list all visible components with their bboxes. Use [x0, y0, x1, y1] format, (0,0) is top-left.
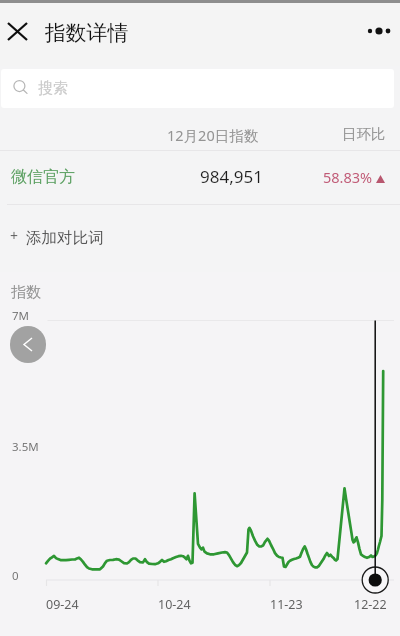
staticText: 微信官方 — [11, 167, 75, 187]
staticText: 984,951 — [200, 165, 263, 188]
staticText: 12月20日指数 — [167, 125, 259, 145]
staticText: 7M — [12, 308, 30, 324]
staticText: 12-22 — [354, 596, 387, 613]
staticText: 指数详情 — [45, 20, 129, 46]
staticText: 58.83% — [323, 167, 373, 187]
staticText: 指数 — [11, 283, 41, 302]
staticText: 0 — [12, 568, 19, 584]
button[interactable]: 搜索 — [1, 69, 394, 108]
button[interactable]: Close — [0, 7, 34, 55]
staticText: 搜索 — [38, 79, 68, 98]
staticText: 09-24 — [46, 596, 79, 613]
staticText: 11-23 — [270, 596, 303, 613]
staticText: 添加对比词 — [26, 228, 104, 248]
staticText: 10-24 — [158, 596, 191, 613]
staticText: 日环比 — [342, 125, 386, 143]
button[interactable]: Previous — [10, 326, 46, 363]
button[interactable]: 微信官方 — [0, 151, 400, 204]
button[interactable]: More options — [358, 7, 400, 55]
button[interactable]: + — [0, 205, 400, 263]
staticText: 3.5M — [12, 439, 39, 455]
staticText: + — [10, 226, 19, 245]
